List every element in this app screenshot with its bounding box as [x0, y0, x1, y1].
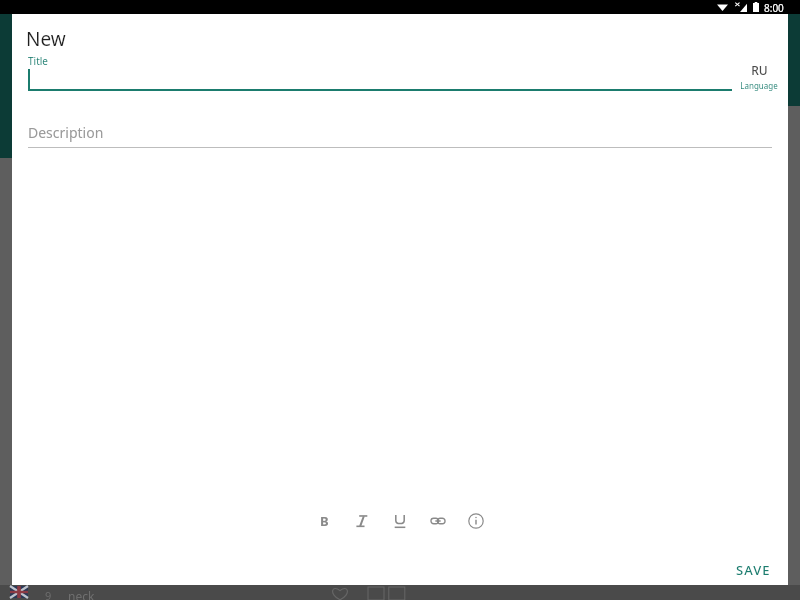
button[interactable]: RU [736, 62, 782, 91]
staticText: SAVE [736, 561, 771, 579]
staticText: Language [740, 80, 778, 91]
staticText: New [26, 26, 66, 52]
button[interactable]: Description input [28, 117, 772, 147]
staticText: Title [28, 54, 48, 68]
button[interactable]: Info [463, 508, 489, 534]
staticText: neck [68, 588, 95, 600]
button[interactable]: Insert link [425, 508, 451, 534]
staticText: RU [751, 62, 768, 78]
button[interactable]: Title input [28, 66, 732, 91]
button[interactable]: SAVE [724, 555, 783, 585]
staticText: 8:00 [764, 1, 784, 15]
button[interactable]: Bold [311, 508, 337, 534]
button[interactable]: Underline [387, 508, 413, 534]
button[interactable]: Italic [349, 508, 375, 534]
staticText: B [320, 512, 329, 530]
staticText: Description [28, 123, 104, 142]
staticText: 9 [45, 588, 52, 600]
